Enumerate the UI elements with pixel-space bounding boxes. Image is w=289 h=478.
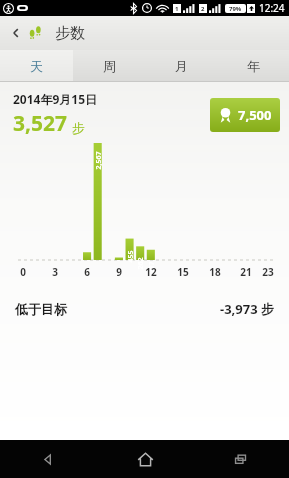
button[interactable]: 月 — [145, 50, 217, 81]
button[interactable]: Back — [0, 440, 97, 478]
staticText: 23 — [262, 265, 274, 279]
staticText: 79% — [229, 5, 242, 13]
staticText: 6 — [84, 265, 90, 279]
staticText: 9 — [116, 265, 122, 279]
staticText: 217 — [146, 260, 156, 273]
staticText: 步 — [72, 120, 85, 136]
button[interactable]: 7,500 — [210, 98, 280, 132]
staticText: 1 — [175, 5, 179, 13]
staticText: 18 — [209, 265, 221, 279]
staticText: 15 — [177, 265, 189, 279]
staticText: 月 — [175, 58, 188, 74]
staticText: 年 — [247, 58, 260, 74]
button[interactable]: 年 — [217, 50, 289, 81]
staticText: 天 — [30, 58, 43, 74]
staticText: -3,973 步 — [220, 300, 274, 318]
staticText: 12 — [145, 265, 157, 279]
staticText: 262 — [135, 256, 145, 269]
staticText: 周 — [103, 58, 116, 74]
staticText: 455 — [125, 249, 135, 262]
button[interactable]: Recent apps — [193, 440, 289, 478]
staticText: 低于目标 — [15, 301, 67, 317]
button[interactable]: 天 — [0, 50, 73, 81]
button[interactable]: 低于目标 — [15, 300, 274, 318]
staticText: 0 — [20, 265, 26, 279]
button[interactable]: Home — [97, 440, 193, 478]
staticText: 7 — [114, 271, 124, 276]
staticText: 7,500 — [238, 106, 272, 124]
staticText: 步数 — [55, 24, 85, 43]
button[interactable]: 周 — [73, 50, 145, 81]
staticText: 12:24 — [259, 1, 285, 15]
staticText: 3,527 — [13, 109, 68, 138]
staticText: 2,567 — [93, 150, 103, 169]
staticText: 21 — [240, 265, 252, 279]
staticText: 2014年9月15日 — [13, 91, 98, 107]
staticText: 3 — [52, 265, 58, 279]
button[interactable]: Back — [5, 22, 27, 44]
staticText: 2 — [201, 5, 205, 13]
